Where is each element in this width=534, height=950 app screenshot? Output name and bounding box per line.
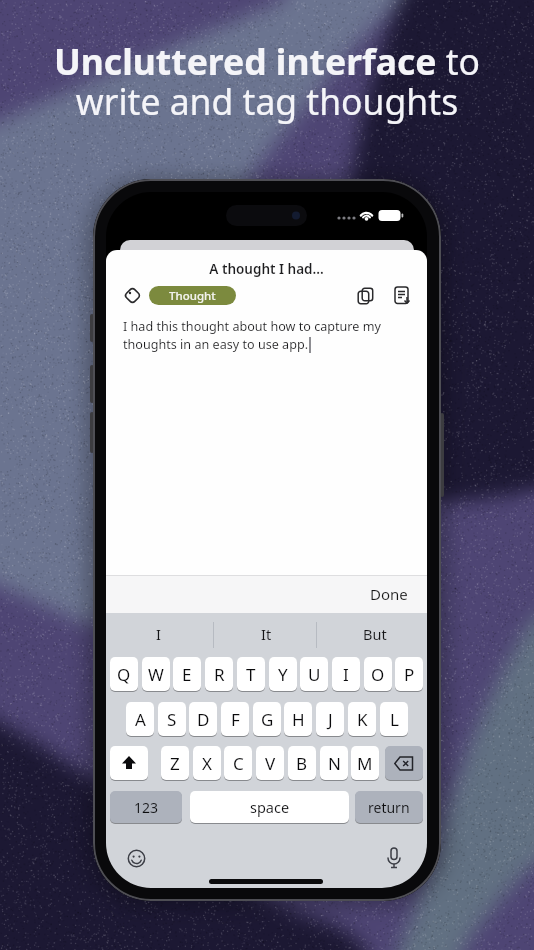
staticText: O	[371, 663, 385, 686]
button[interactable]	[110, 746, 148, 780]
staticText: P	[404, 663, 415, 686]
button[interactable]: C	[224, 746, 252, 780]
staticText: X	[202, 752, 212, 775]
button[interactable]	[386, 847, 402, 870]
staticText: thoughts in an easy to use app.	[123, 336, 309, 353]
staticText: B	[296, 752, 308, 775]
staticText: M	[357, 752, 373, 775]
staticText: Thought	[169, 288, 216, 304]
button[interactable]: I	[156, 624, 161, 644]
button[interactable]: A	[126, 702, 154, 736]
staticText: L	[390, 708, 399, 731]
staticText: F	[231, 708, 240, 731]
button[interactable]: I	[332, 657, 360, 691]
button[interactable]: F	[221, 702, 249, 736]
staticText: J	[328, 708, 333, 731]
staticText: Uncluttered interface to write and tag t…	[0, 37, 534, 126]
staticText: I had this thought about how to capture …	[123, 318, 381, 335]
button[interactable]: M	[351, 746, 379, 780]
staticText: return	[368, 798, 410, 817]
button[interactable]: Q	[110, 657, 138, 691]
button[interactable]: Z	[161, 746, 189, 780]
button[interactable]: B	[288, 746, 316, 780]
button[interactable]: It	[261, 624, 272, 644]
button[interactable]: R	[205, 657, 233, 691]
button[interactable]: E	[173, 657, 201, 691]
button[interactable]	[393, 286, 412, 305]
button[interactable]: D	[189, 702, 217, 736]
button[interactable]: N	[320, 746, 348, 780]
button[interactable]: U	[300, 657, 328, 691]
button[interactable]: But	[363, 624, 387, 644]
staticText: Z	[170, 752, 180, 775]
button[interactable]: Thought	[149, 286, 236, 305]
button[interactable]: X	[193, 746, 221, 780]
button[interactable]: W	[142, 657, 170, 691]
staticText: Q	[117, 663, 131, 686]
staticText: I	[343, 663, 349, 686]
button[interactable]: J	[316, 702, 344, 736]
staticText: E	[182, 663, 192, 686]
button[interactable]	[385, 746, 423, 780]
staticText: U	[308, 663, 321, 686]
staticText: 123	[134, 798, 159, 817]
button[interactable]	[127, 849, 146, 868]
button[interactable]: G	[253, 702, 281, 736]
staticText: S	[167, 708, 177, 731]
staticText: V	[265, 752, 276, 775]
button[interactable]: Y	[269, 657, 297, 691]
button[interactable]: S	[158, 702, 186, 736]
button[interactable]: P	[395, 657, 423, 691]
button[interactable]: space	[190, 791, 349, 823]
staticText: A thought I had...	[106, 260, 427, 278]
staticText: C	[233, 752, 244, 775]
staticText: Y	[278, 663, 288, 686]
button[interactable]: K	[348, 702, 376, 736]
staticText: G	[261, 708, 274, 731]
button[interactable]: O	[364, 657, 392, 691]
button[interactable]: return	[355, 791, 423, 823]
button[interactable]: H	[284, 702, 312, 736]
button[interactable]: Done	[370, 584, 408, 604]
staticText: T	[246, 663, 256, 686]
staticText: H	[292, 708, 305, 731]
staticText: N	[328, 752, 341, 775]
staticText: A	[135, 708, 146, 731]
staticText: D	[197, 708, 210, 731]
button[interactable]: L	[380, 702, 408, 736]
button[interactable]: T	[237, 657, 265, 691]
staticText: space	[250, 797, 290, 817]
button[interactable]: 123	[110, 791, 182, 823]
staticText: W	[148, 663, 164, 686]
staticText: R	[214, 663, 225, 686]
staticText: K	[357, 708, 368, 731]
button[interactable]	[357, 287, 374, 304]
button[interactable]: V	[256, 746, 284, 780]
